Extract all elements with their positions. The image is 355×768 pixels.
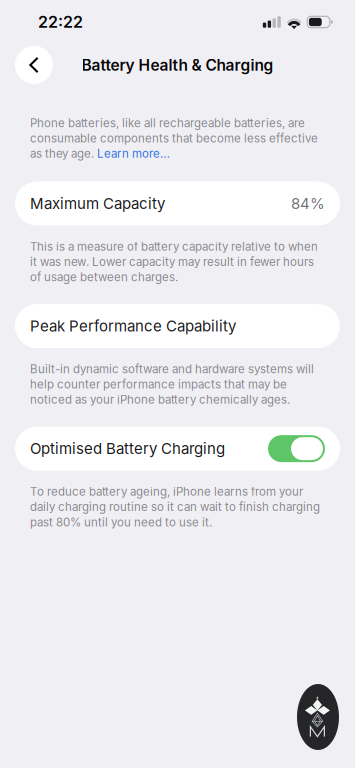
button[interactable]: Maximum Capacity [15, 181, 340, 225]
button[interactable]: Assistant [297, 684, 339, 750]
staticText: Battery Health & Charging [81, 56, 273, 74]
staticText: Peak Performance Capability [30, 317, 236, 335]
staticText: 22:22 [38, 12, 83, 32]
button[interactable]: Peak Performance Capability [15, 304, 340, 348]
button[interactable]: Back [15, 46, 53, 84]
staticText: Maximum Capacity [30, 194, 165, 213]
button[interactable]: Optimised Battery Charging [15, 427, 340, 471]
staticText: To reduce battery ageing, iPhone learns … [30, 485, 320, 529]
staticText: Phone batteries, like all rechargeable b… [30, 116, 318, 160]
staticText: This is a measure of battery capacity re… [30, 239, 318, 284]
staticText: Optimised Battery Charging [30, 439, 225, 458]
staticText: 84% [291, 194, 325, 213]
staticText: Built-in dynamic software and hardware s… [30, 362, 314, 407]
